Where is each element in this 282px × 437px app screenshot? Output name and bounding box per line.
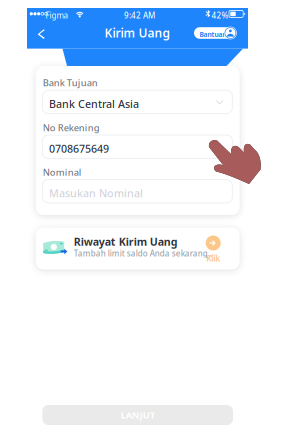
button[interactable]: LANJUT bbox=[42, 405, 233, 425]
button[interactable]: Back bbox=[31, 22, 51, 46]
staticText: Bantuan bbox=[199, 30, 226, 39]
staticText: Kirim Uang bbox=[104, 25, 170, 41]
staticText: Tambah limit saldo Anda sekarang.. bbox=[74, 248, 212, 259]
staticText: Klik bbox=[206, 253, 220, 264]
staticText: Nominal bbox=[43, 166, 82, 178]
staticText: Bank Central Asia bbox=[49, 97, 139, 111]
staticText: Bank Tujuan bbox=[43, 76, 98, 89]
staticText: Riwayat Kirim Uang bbox=[74, 234, 178, 249]
staticText: Masukan Nominal bbox=[49, 186, 143, 200]
staticText: 42% bbox=[211, 10, 228, 21]
staticText: 9:42 AM bbox=[124, 10, 155, 21]
button[interactable]: Riwayat Kirim Uang bbox=[36, 227, 240, 269]
staticText: No Rekening bbox=[43, 121, 100, 134]
staticText: Figma bbox=[46, 10, 68, 21]
staticText: LANJUT bbox=[121, 409, 155, 421]
button[interactable]: Bantuan bbox=[194, 27, 237, 40]
staticText: 0708675649 bbox=[49, 141, 109, 156]
